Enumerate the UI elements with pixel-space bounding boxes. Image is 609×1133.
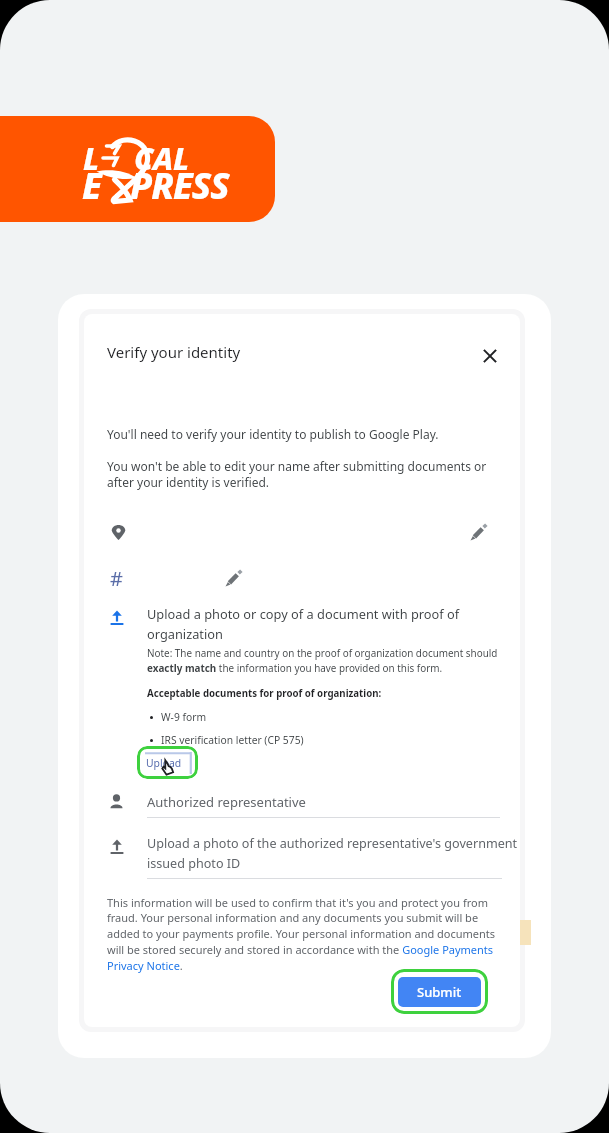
button[interactable]: Upload <box>137 746 198 779</box>
staticText: # <box>110 565 123 591</box>
button[interactable]: L <box>0 116 275 222</box>
staticText: You won't be able to edit your name afte… <box>107 458 497 491</box>
staticText: Authorized representative <box>147 793 306 811</box>
button[interactable]: Submit <box>391 969 488 1014</box>
staticText: Acceptable documents for proof of organi… <box>147 687 382 700</box>
staticText: Upload <box>146 756 182 770</box>
staticText: W-9 form <box>161 710 207 724</box>
staticText: IRS verification letter (CP 575) <box>161 733 304 747</box>
staticText: E <box>82 161 102 210</box>
button[interactable]: Close <box>472 338 508 374</box>
staticText: Upload a photo of the authorized represe… <box>147 835 518 872</box>
staticText: Submit <box>417 983 462 1001</box>
staticText: Note: The name and country on the proof … <box>147 646 518 675</box>
staticText: Upload a photo or copy of a document wit… <box>147 605 518 643</box>
staticText: You'll need to verify your identity to p… <box>107 426 439 442</box>
button[interactable]: Edit number <box>225 570 242 587</box>
staticText: L <box>83 137 100 179</box>
staticText: PRESS <box>130 161 229 210</box>
button[interactable]: Edit address <box>470 524 487 541</box>
staticText: CAL <box>134 137 189 179</box>
staticText: This information will be used to confirm… <box>107 895 497 974</box>
staticText: Verify your identity <box>107 342 241 362</box>
